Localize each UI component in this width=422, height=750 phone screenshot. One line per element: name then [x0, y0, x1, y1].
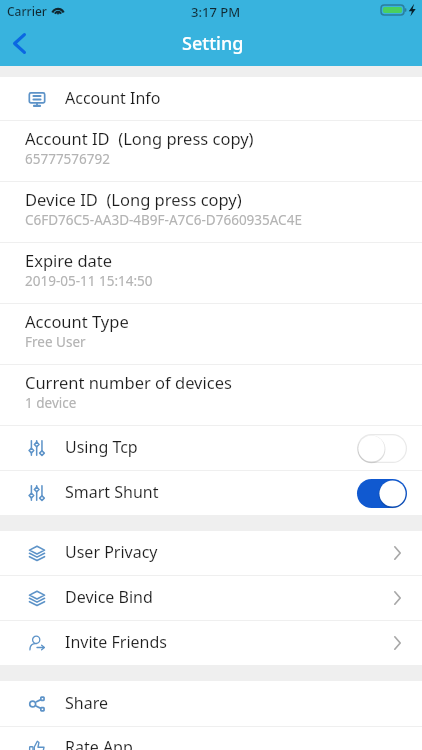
button[interactable]: Device Bind	[0, 576, 422, 620]
staticText: Account Info	[65, 87, 161, 109]
staticText: Rate App	[65, 736, 133, 750]
staticText: Free User	[25, 333, 86, 351]
staticText: Carrier	[7, 3, 47, 19]
staticText: Device Bind	[65, 586, 153, 608]
button[interactable]: Device ID (Long press copy)	[0, 182, 422, 242]
button[interactable]: Share	[0, 681, 422, 726]
staticText: C6FD76C5-AA3D-4B9F-A7C6-D7660935AC4E	[25, 211, 302, 229]
button[interactable]: Rate App	[0, 727, 422, 750]
staticText: Share	[65, 692, 108, 714]
button[interactable]: Smart Shunt	[0, 471, 422, 515]
staticText: 3:17 PM	[191, 3, 241, 21]
button[interactable]: Account Info	[0, 77, 422, 120]
staticText: Account ID (Long press copy)	[25, 127, 254, 149]
staticText: Current number of devices	[25, 371, 232, 393]
staticText: Smart Shunt	[65, 481, 159, 503]
button[interactable]: User Privacy	[0, 531, 422, 575]
button[interactable]: Account Type	[0, 304, 422, 364]
button[interactable]: Current number of devices	[0, 365, 422, 425]
staticText: 1 device	[25, 394, 77, 412]
button[interactable]: Invite Friends	[0, 621, 422, 665]
staticText: User Privacy	[65, 541, 158, 563]
staticText: Expire date	[25, 249, 113, 271]
staticText: 2019-05-11 15:14:50	[25, 272, 153, 290]
staticText: Device ID (Long press copy)	[25, 188, 242, 210]
staticText: Setting	[182, 31, 244, 56]
staticText: Invite Friends	[65, 631, 167, 653]
staticText: Using Tcp	[65, 436, 138, 458]
staticText: Account Type	[25, 310, 129, 332]
button[interactable]: Back	[0, 21, 44, 66]
staticText: 65777576792	[25, 150, 110, 168]
button[interactable]: Account ID (Long press copy)	[0, 121, 422, 181]
button[interactable]: Using Tcp	[0, 426, 422, 470]
button[interactable]: Expire date	[0, 243, 422, 303]
